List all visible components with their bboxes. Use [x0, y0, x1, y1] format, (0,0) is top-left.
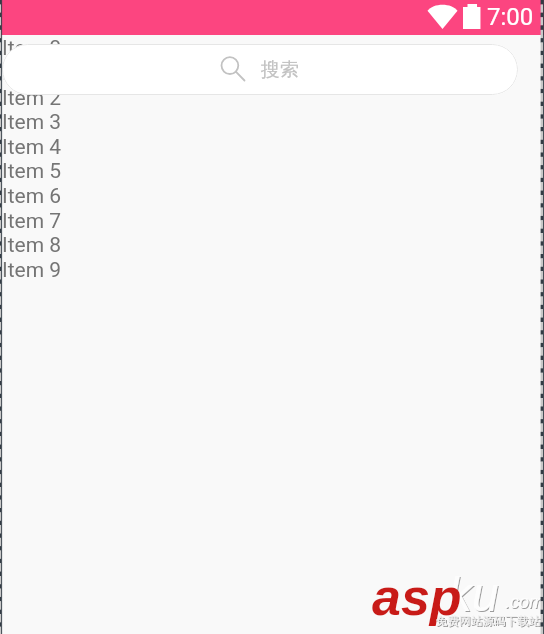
staticText: Item 0 — [2, 36, 62, 61]
other: Wi-Fi signal — [427, 5, 458, 29]
staticText: Item 7 — [2, 209, 62, 234]
staticText: 免费网站源码下载站! — [436, 613, 544, 629]
staticText: Item 1 — [2, 61, 62, 86]
staticText: Item 6 — [2, 184, 62, 209]
button[interactable]: Item 3 — [0, 110, 544, 135]
staticText: Item 2 — [2, 86, 62, 111]
staticText: Item 8 — [2, 233, 62, 258]
button[interactable]: Item 1 — [0, 61, 544, 86]
staticText: Item 4 — [2, 135, 62, 160]
staticText: Item 3 — [2, 110, 62, 135]
staticText: ku — [449, 569, 500, 623]
button[interactable]: Item 0 — [0, 36, 544, 61]
button[interactable]: Item 8 — [0, 233, 544, 258]
button[interactable]: Item 9 — [0, 258, 544, 283]
staticText: Item 5 — [2, 159, 62, 184]
staticText: 免费网站源码下载站! — [437, 614, 544, 630]
staticText: Item 9 — [2, 258, 62, 283]
button[interactable]: 搜索 — [2, 44, 518, 95]
button[interactable]: Item 2 — [0, 86, 544, 111]
button[interactable]: Item 5 — [0, 159, 544, 184]
other: Battery full — [463, 4, 481, 29]
button[interactable]: Item 6 — [0, 184, 544, 209]
staticText: .com — [506, 593, 544, 613]
staticText: .com — [505, 592, 544, 612]
staticText: ku — [448, 568, 499, 622]
staticText: 7:00 — [487, 3, 534, 31]
button[interactable]: Item 7 — [0, 209, 544, 234]
staticText: asp — [372, 568, 462, 626]
staticText: 搜索 — [261, 58, 299, 82]
button[interactable]: Item 4 — [0, 135, 544, 160]
